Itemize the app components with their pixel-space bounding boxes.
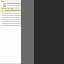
button[interactable]: Attachment: [3, 3, 6, 7]
button[interactable]: Toolbar: [0, 7, 64, 9]
button[interactable]: Document header: [0, 2, 64, 7]
button[interactable]: Highlighted item: [0, 9, 64, 12]
